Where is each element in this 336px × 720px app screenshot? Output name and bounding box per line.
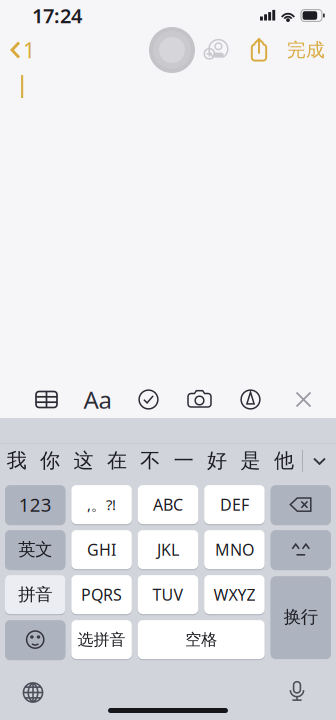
staticText: 1: [23, 36, 35, 64]
staticText: 拼音: [18, 584, 52, 605]
staticText: MNO: [215, 539, 254, 560]
button[interactable]: 换行: [271, 575, 331, 659]
button[interactable]: 我: [0, 444, 33, 478]
staticText: PQRS: [81, 584, 122, 605]
staticText: 你: [40, 448, 60, 473]
button[interactable]: PQRS: [71, 574, 132, 615]
staticText: 17:24: [32, 2, 82, 29]
button[interactable]: 选拼音: [71, 619, 132, 660]
button[interactable]: Delete: [271, 484, 331, 525]
staticText: ABC: [153, 494, 183, 515]
button[interactable]: Kaomoji: [271, 529, 331, 570]
button[interactable]: 你: [33, 444, 67, 478]
staticText: 在: [107, 448, 127, 473]
staticText: TUV: [152, 584, 183, 605]
button[interactable]: 在: [100, 444, 134, 478]
button[interactable]: 完成: [281, 31, 331, 69]
button[interactable]: TUV: [138, 574, 198, 615]
button[interactable]: 1: [0, 31, 41, 69]
staticText: 一: [174, 448, 194, 473]
button[interactable]: 不: [134, 444, 167, 478]
button[interactable]: 好: [200, 444, 234, 478]
staticText: 不: [140, 448, 160, 473]
staticText: 选拼音: [78, 630, 126, 649]
button[interactable]: 他: [267, 444, 301, 478]
button[interactable]: 是: [234, 444, 267, 478]
staticText: 我: [7, 448, 27, 473]
button[interactable]: Checklist: [123, 381, 174, 418]
button[interactable]: More candidates: [303, 444, 336, 478]
button[interactable]: GHI: [71, 529, 132, 570]
staticText: ,。?!: [87, 495, 116, 514]
button[interactable]: DEF: [204, 484, 265, 525]
button[interactable]: Emoji: [5, 619, 65, 660]
button[interactable]: 123: [5, 484, 65, 525]
button[interactable]: Add People: [201, 31, 231, 69]
button[interactable]: MNO: [204, 529, 265, 570]
button[interactable]: WXYZ: [204, 574, 265, 615]
staticText: 空格: [185, 630, 217, 649]
button[interactable]: Table: [21, 381, 72, 418]
button[interactable]: ABC: [138, 484, 198, 525]
staticText: 是: [240, 448, 260, 473]
button[interactable]: 拼音: [5, 574, 65, 615]
button[interactable]: 空格: [138, 619, 265, 660]
staticText: 英文: [18, 539, 52, 560]
button[interactable]: Markup: [225, 381, 276, 418]
button[interactable]: Camera: [174, 381, 225, 418]
staticText: 完成: [287, 38, 325, 61]
button[interactable]: Close Keyboard: [276, 381, 331, 418]
button[interactable]: Share: [244, 31, 274, 69]
button[interactable]: Next keyboard: [6, 671, 60, 713]
staticText: 这: [73, 448, 93, 473]
staticText: DEF: [220, 494, 249, 515]
staticText: 他: [274, 448, 294, 473]
button[interactable]: 一: [167, 444, 200, 478]
staticText: WXYZ: [213, 584, 255, 605]
button[interactable]: JKL: [138, 529, 198, 570]
button[interactable]: 英文: [5, 529, 65, 570]
staticText: JKL: [157, 539, 179, 560]
button[interactable]: 这: [67, 444, 100, 478]
button[interactable]: Aa: [72, 381, 123, 418]
staticText: 好: [207, 448, 227, 473]
staticText: 换行: [284, 606, 318, 628]
staticText: 123: [19, 492, 52, 517]
staticText: GHI: [87, 539, 116, 560]
button[interactable]: Dictation: [270, 671, 324, 713]
button[interactable]: ,。?!: [71, 484, 132, 525]
staticText: Aa: [83, 384, 111, 415]
